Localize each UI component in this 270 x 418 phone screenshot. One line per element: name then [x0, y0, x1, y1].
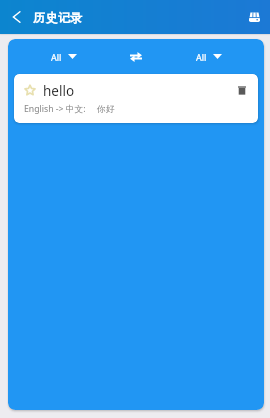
- staticText: hello: [43, 82, 75, 98]
- button[interactable]: hello: [14, 74, 258, 123]
- button[interactable]: All: [8, 39, 119, 74]
- button[interactable]: Swap languages: [119, 39, 153, 74]
- button[interactable]: Clear history: [238, 0, 270, 34]
- button[interactable]: Back: [0, 0, 33, 34]
- staticText: 你好: [97, 104, 115, 115]
- staticText: 历史记录: [33, 10, 83, 25]
- staticText: English -> 中文:: [24, 103, 86, 115]
- staticText: All: [196, 51, 207, 63]
- staticText: All: [51, 51, 62, 63]
- button[interactable]: All: [153, 39, 264, 74]
- button[interactable]: Delete: [230, 82, 254, 98]
